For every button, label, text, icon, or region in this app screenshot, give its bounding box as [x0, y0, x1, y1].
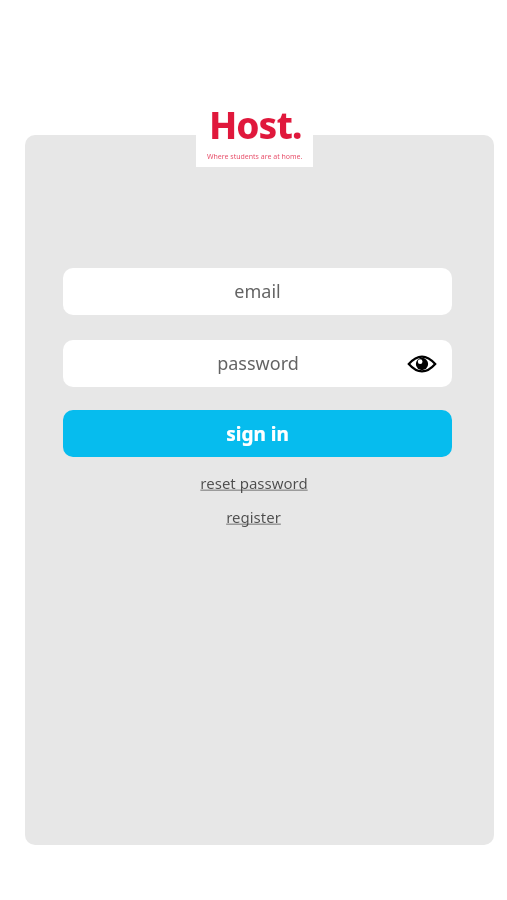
button[interactable]: sign in [63, 410, 452, 457]
staticText: password [217, 351, 299, 376]
button[interactable]: register [216, 504, 291, 530]
button[interactable]: reset password [190, 470, 318, 496]
staticText: email [234, 279, 281, 304]
staticText: reset password [200, 473, 308, 493]
staticText: Where students are at home. [207, 152, 303, 162]
staticText: register [226, 507, 281, 527]
staticText: sign in [226, 421, 289, 447]
button[interactable]: password [63, 340, 452, 387]
button[interactable]: Show password [404, 346, 440, 382]
button[interactable]: email [63, 268, 452, 315]
staticText: Host. [209, 99, 302, 149]
